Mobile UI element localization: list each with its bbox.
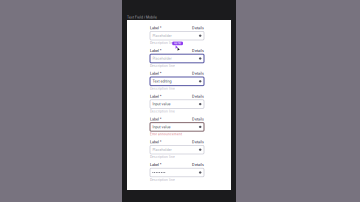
button[interactable] — [150, 168, 204, 177]
staticText: Label — [150, 94, 159, 98]
staticText: * — [160, 163, 162, 167]
staticText: * — [160, 49, 162, 53]
staticText: * — [160, 140, 162, 144]
button[interactable]: Placeholder — [150, 145, 204, 154]
staticText: Details — [192, 71, 204, 76]
button[interactable]: Details — [192, 71, 204, 76]
staticText: Text Field / Mobile — [127, 15, 157, 19]
button[interactable]: Details — [192, 117, 204, 121]
staticText: Placeholder — [152, 34, 171, 38]
button[interactable]: Text editing — [150, 77, 204, 86]
button[interactable]: Placeholder — [150, 31, 204, 40]
staticText: Label — [150, 49, 159, 53]
staticText: * — [160, 117, 162, 121]
staticText: Details — [192, 49, 204, 53]
staticText: Description line — [150, 64, 175, 68]
staticText: Details — [192, 140, 204, 144]
staticText: Name — [174, 42, 182, 45]
staticText: * — [160, 26, 162, 30]
button[interactable]: Details — [192, 94, 204, 98]
button[interactable]: Details — [192, 26, 204, 30]
staticText: Description line — [150, 41, 175, 45]
staticText: Description line — [150, 109, 175, 113]
button[interactable]: Input value — [150, 123, 204, 131]
button[interactable]: Input value — [150, 100, 204, 108]
staticText: Description line — [150, 178, 175, 182]
staticText: Description line — [150, 87, 175, 90]
staticText: Label — [150, 71, 159, 76]
staticText: * — [160, 94, 162, 98]
button[interactable]: Details — [192, 49, 204, 53]
button[interactable]: Details — [192, 140, 204, 144]
staticText: Details — [192, 163, 204, 167]
staticText: Details — [192, 117, 204, 121]
staticText: Error announcement — [150, 132, 182, 136]
staticText: * — [160, 71, 162, 76]
staticText: Label — [150, 117, 159, 121]
staticText: Description line — [150, 155, 175, 159]
staticText: Label — [150, 26, 159, 30]
staticText: Label — [150, 163, 159, 167]
staticText: Input value — [152, 102, 170, 106]
staticText: Placeholder — [152, 56, 171, 61]
staticText: Placeholder — [152, 148, 171, 152]
staticText: Details — [192, 94, 204, 98]
staticText: Details — [192, 26, 204, 30]
staticText: Text editing — [152, 79, 171, 83]
staticText: Label — [150, 140, 159, 144]
button[interactable]: Details — [192, 163, 204, 167]
button[interactable]: Placeholder — [150, 54, 204, 63]
staticText: Input value — [152, 125, 170, 129]
